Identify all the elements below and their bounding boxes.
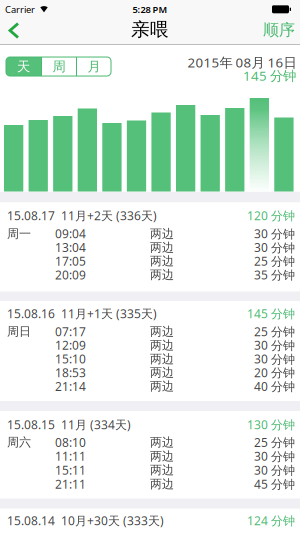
staticText: 两边	[150, 267, 174, 282]
button[interactable]: 2015年08月10日	[102, 123, 122, 191]
button[interactable]: 周	[42, 57, 76, 76]
button[interactable]: Back	[7, 22, 21, 38]
button[interactable]: 2015年08月16日	[250, 98, 269, 191]
staticText: 11月+2天 (336天)	[61, 207, 157, 223]
staticText: 15:11	[55, 462, 86, 478]
staticText: 145 分钟	[243, 67, 296, 84]
staticText: 15:10	[55, 351, 86, 367]
staticText: 月	[87, 58, 100, 75]
staticText: 两边	[150, 365, 174, 380]
staticText: 30 分钟	[254, 226, 295, 242]
staticText: 08:10	[55, 434, 86, 450]
staticText: Carrier	[5, 3, 35, 16]
staticText: 天	[17, 58, 30, 75]
button[interactable]: 2015年08月07日	[29, 120, 48, 191]
staticText: 130 分钟	[247, 416, 295, 432]
staticText: 15.08.17	[7, 207, 55, 223]
staticText: 17:05	[55, 253, 86, 269]
staticText: 25 分钟	[254, 253, 295, 269]
staticText: 11:11	[55, 448, 86, 464]
staticText: 两边	[150, 351, 174, 366]
staticText: 18:53	[55, 365, 86, 380]
button[interactable]: 月	[77, 57, 111, 76]
staticText: 两边	[150, 338, 174, 352]
staticText: 周一	[7, 226, 31, 241]
staticText: 30 分钟	[254, 337, 295, 353]
staticText: 亲喂	[131, 18, 169, 41]
staticText: 两边	[150, 463, 174, 477]
staticText: 两边	[150, 379, 174, 394]
button[interactable]: 2015年08月06日	[4, 125, 23, 191]
button[interactable]: 2015年08月14日	[201, 115, 220, 191]
staticText: 15.08.14	[7, 512, 55, 528]
button[interactable]: 2015年08月15日	[225, 108, 244, 191]
staticText: 两边	[150, 226, 174, 241]
button[interactable]: 2015年08月09日	[78, 108, 97, 191]
staticText: 40 分钟	[254, 378, 295, 394]
staticText: 30 分钟	[254, 462, 295, 478]
staticText: 20:09	[55, 267, 86, 283]
staticText: 21:11	[55, 476, 86, 492]
staticText: 周	[52, 58, 65, 75]
staticText: 2015年 08月 16日	[187, 53, 296, 71]
staticText: 30 分钟	[254, 239, 295, 255]
staticText: 15.08.15	[7, 416, 55, 432]
staticText: 两边	[150, 240, 174, 255]
button[interactable]: 顺序	[263, 20, 295, 40]
staticText: 周日	[7, 324, 31, 339]
staticText: 周六	[7, 435, 31, 450]
staticText: 12:09	[55, 337, 86, 353]
staticText: 21:14	[55, 378, 86, 394]
staticText: 两边	[150, 477, 174, 491]
staticText: 5:28 PM	[132, 3, 167, 16]
staticText: 45 分钟	[254, 476, 295, 492]
staticText: 30 分钟	[254, 448, 295, 464]
staticText: 30 分钟	[254, 351, 295, 367]
button[interactable]: 2015年08月11日	[127, 120, 146, 191]
staticText: 两边	[150, 449, 174, 463]
staticText: 07:17	[55, 323, 86, 339]
staticText: 15.08.16	[7, 305, 55, 321]
staticText: 两边	[150, 435, 174, 450]
staticText: 两边	[150, 324, 174, 339]
staticText: 两边	[150, 254, 174, 268]
staticText: 35 分钟	[254, 267, 295, 283]
staticText: 11月+1天 (335天)	[61, 305, 157, 321]
staticText: 25 分钟	[254, 323, 295, 339]
button[interactable]: 2015年08月12日	[151, 112, 171, 191]
staticText: 顺序	[263, 20, 295, 40]
button[interactable]: 2015年08月08日	[53, 116, 72, 191]
staticText: 09:04	[55, 226, 86, 242]
staticText: 124 分钟	[247, 512, 295, 528]
staticText: 10月+30天 (333天)	[61, 512, 164, 528]
staticText: 20 分钟	[254, 365, 295, 380]
staticText: 25 分钟	[254, 434, 295, 450]
button[interactable]: 天	[6, 57, 41, 76]
staticText: 145 分钟	[247, 305, 295, 321]
staticText: 120 分钟	[247, 207, 295, 223]
button[interactable]: 2015年08月17日	[274, 117, 294, 191]
staticText: 11月 (334天)	[61, 416, 131, 432]
staticText: 13:04	[55, 239, 86, 255]
button[interactable]: 2015年08月13日	[176, 105, 195, 191]
